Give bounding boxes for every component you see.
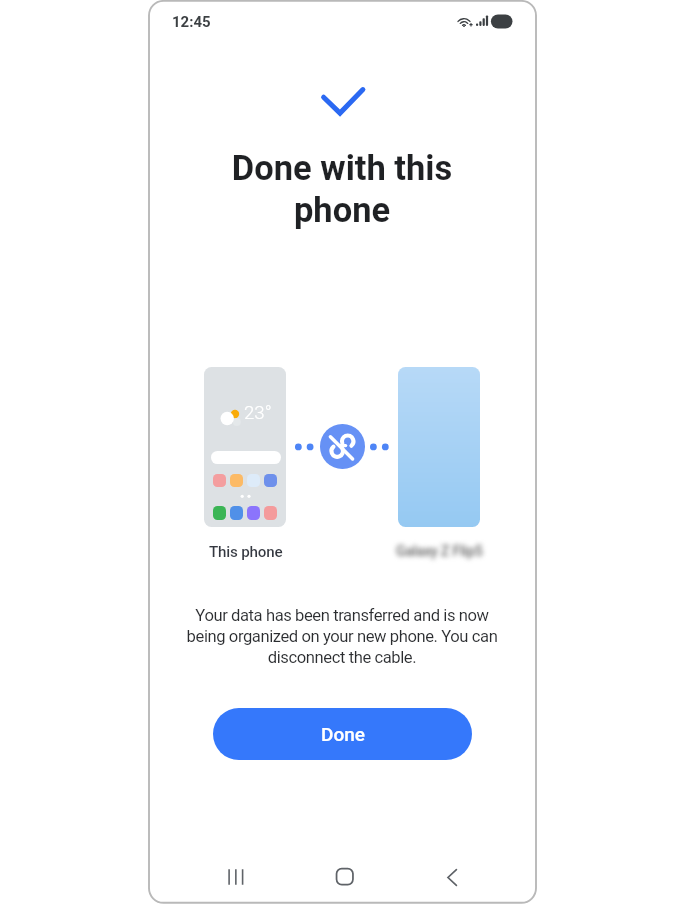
staticText: Done xyxy=(321,723,365,745)
staticText: Done with this phone xyxy=(222,148,462,231)
staticText: 12:45 xyxy=(172,13,211,31)
staticText: Galaxy Z Flip5 xyxy=(396,543,483,560)
button[interactable]: Recent apps xyxy=(217,857,253,893)
button[interactable]: Back xyxy=(434,857,470,893)
button[interactable]: Done xyxy=(213,708,472,760)
staticText: This phone xyxy=(209,543,283,561)
button[interactable]: Home xyxy=(326,857,362,893)
staticText: Your data has been transferred and is no… xyxy=(172,606,512,667)
staticText: 23° xyxy=(244,402,272,424)
